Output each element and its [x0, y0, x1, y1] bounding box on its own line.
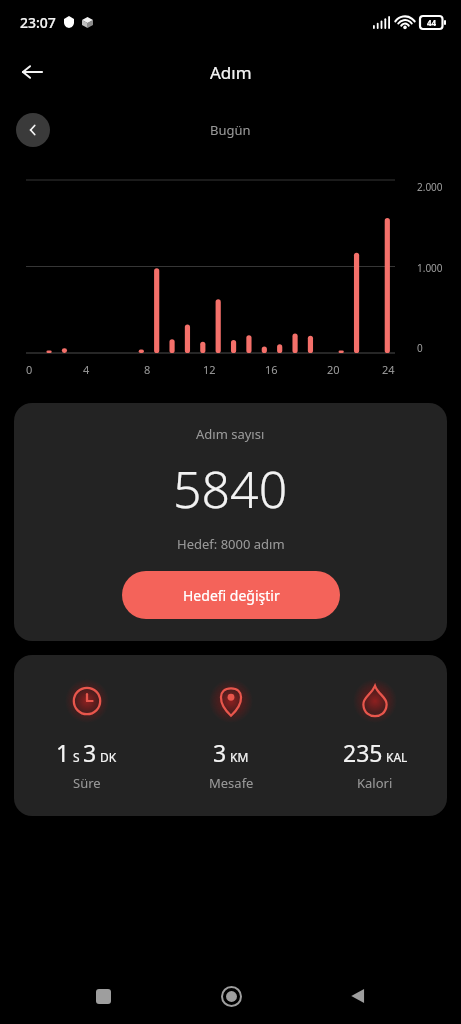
button[interactable]: Recent apps: [79, 972, 127, 1020]
staticText: 0: [417, 341, 423, 353]
staticText: 3: [213, 737, 227, 768]
staticText: 44: [427, 17, 437, 28]
staticText: Mesafe: [209, 774, 254, 792]
staticText: Bugün: [210, 121, 251, 139]
staticText: Süre: [73, 774, 101, 792]
button[interactable]: Back: [8, 48, 56, 96]
staticText: DK: [100, 749, 117, 765]
button[interactable]: 3: [159, 679, 303, 792]
staticText: Adım: [210, 61, 252, 84]
staticText: 20: [327, 362, 340, 377]
staticText: KAL: [386, 749, 408, 765]
staticText: 12: [203, 362, 216, 377]
staticText: 8: [144, 362, 151, 377]
staticText: Hedefi değiştir: [183, 586, 280, 605]
button[interactable]: 235: [303, 679, 447, 792]
staticText: 1.000: [417, 261, 443, 273]
staticText: 1: [56, 737, 70, 768]
staticText: 24: [382, 362, 395, 377]
staticText: S: [73, 749, 80, 765]
button[interactable]: Back: [334, 972, 382, 1020]
staticText: 16: [265, 362, 278, 377]
staticText: 5840: [173, 455, 288, 523]
staticText: 235: [343, 737, 383, 768]
staticText: 2.000: [417, 180, 443, 192]
button[interactable]: Hedefi değiştir: [122, 571, 340, 619]
button[interactable]: 1: [14, 679, 159, 792]
staticText: 3: [83, 737, 97, 768]
staticText: KM: [230, 749, 249, 765]
staticText: Adım sayısı: [196, 425, 265, 443]
staticText: Kalori: [357, 774, 393, 792]
staticText: Hedef: 8000 adım: [177, 535, 285, 553]
staticText: 0: [26, 362, 33, 377]
staticText: 4: [83, 362, 90, 377]
button[interactable]: Home: [207, 972, 255, 1020]
staticText: 23:07: [20, 13, 56, 32]
button[interactable]: Previous day: [16, 113, 50, 147]
